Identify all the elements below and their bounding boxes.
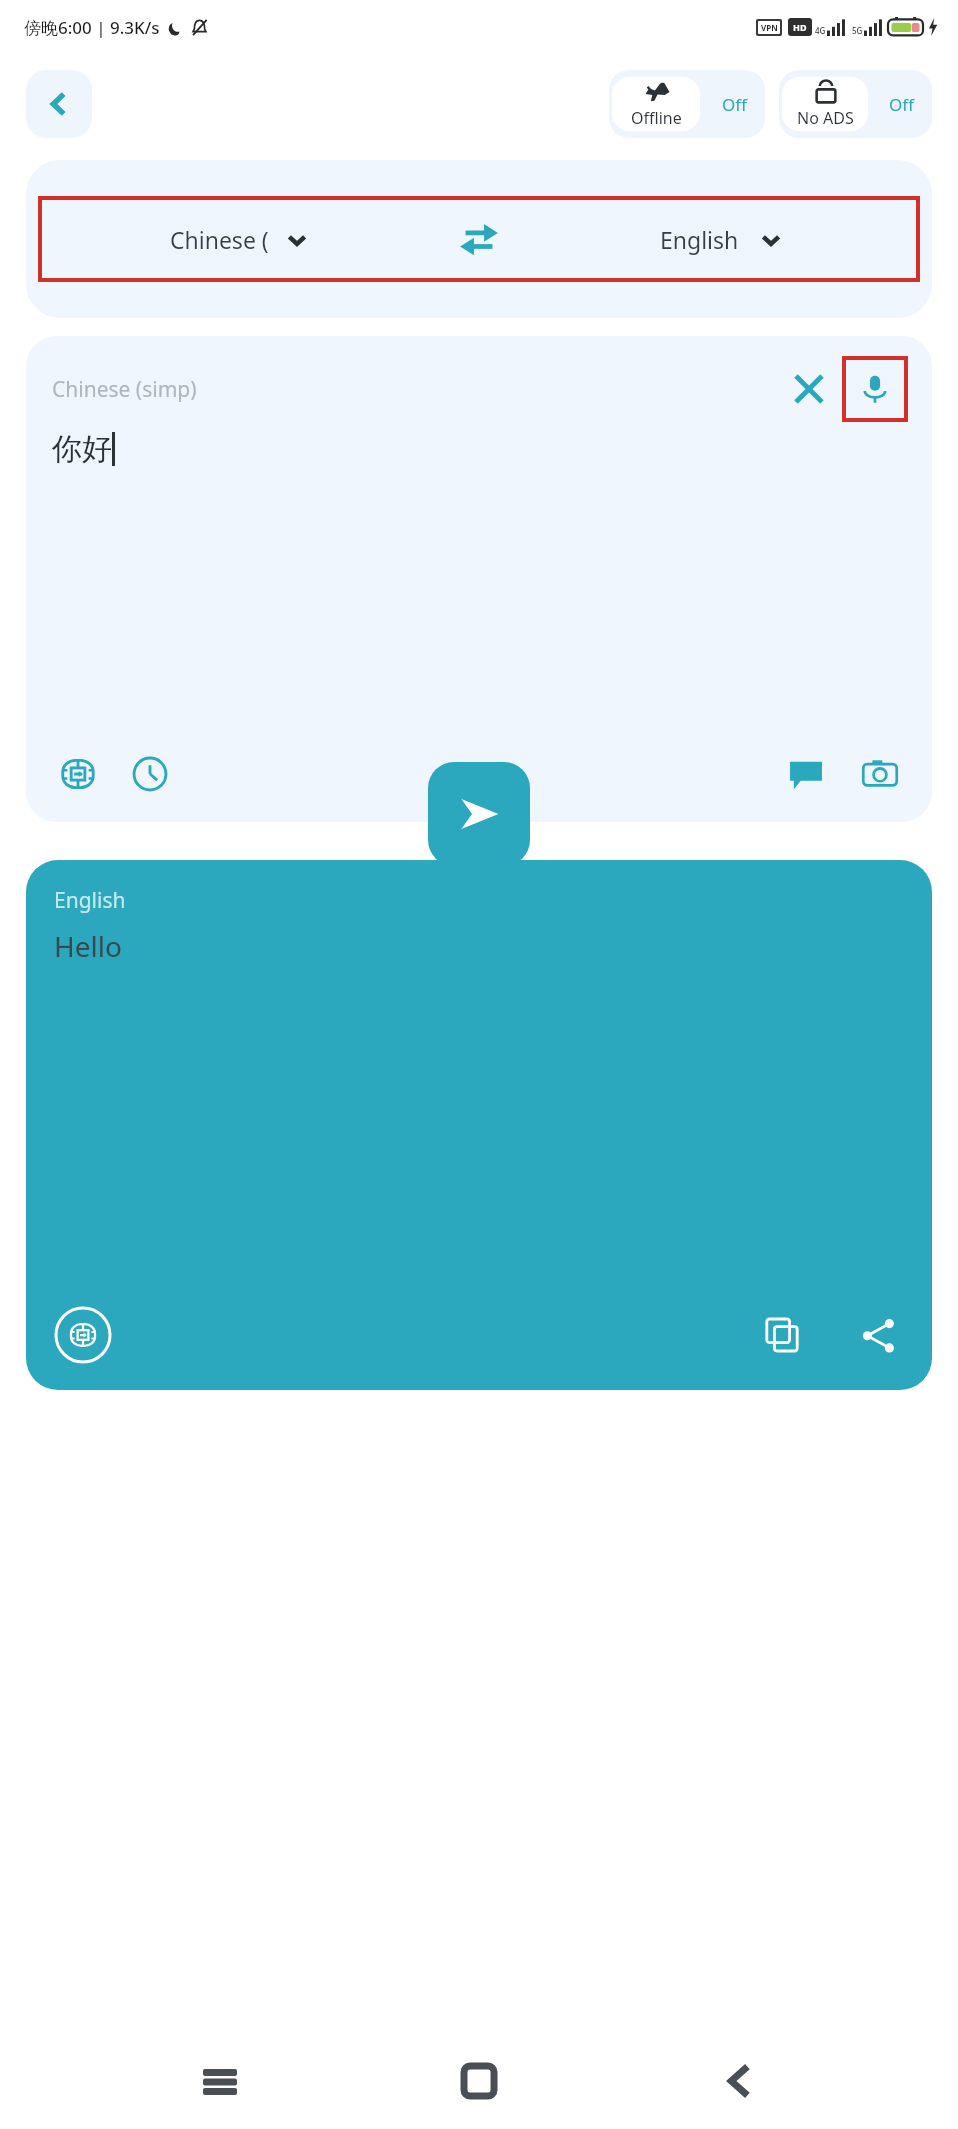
- button[interactable]: Offline: [609, 70, 765, 138]
- staticText: Offline: [631, 107, 682, 129]
- button[interactable]: Recents: [180, 2041, 260, 2121]
- staticText: Chinese (: [170, 224, 269, 255]
- button[interactable]: Back: [699, 2041, 779, 2121]
- button[interactable]: Back: [26, 70, 92, 138]
- button[interactable]: Copy: [756, 1309, 808, 1361]
- staticText: Hello: [54, 927, 122, 965]
- staticText: 5G: [852, 25, 863, 36]
- button[interactable]: Swap languages: [436, 198, 522, 280]
- button[interactable]: Share: [852, 1309, 904, 1361]
- staticText: Off: [889, 93, 914, 116]
- button[interactable]: AI: [54, 1306, 112, 1364]
- staticText: 傍晚6:00 | 9.3K/s: [24, 16, 160, 39]
- button[interactable]: English: [26, 860, 932, 1390]
- button[interactable]: Camera: [854, 748, 906, 800]
- staticText: Chinese (simp): [52, 375, 197, 404]
- button[interactable]: Chinese (simp): [26, 336, 932, 822]
- button[interactable]: Clear: [786, 366, 832, 412]
- button[interactable]: Home: [439, 2041, 519, 2121]
- button[interactable]: English: [522, 198, 918, 280]
- staticText: HD: [793, 21, 807, 33]
- button[interactable]: Conversation: [780, 748, 832, 800]
- staticText: 你好: [52, 430, 112, 468]
- staticText: English: [54, 886, 126, 915]
- button[interactable]: History: [124, 748, 176, 800]
- button[interactable]: No ADS: [779, 70, 932, 138]
- button[interactable]: AI translate: [52, 748, 104, 800]
- staticText: No ADS: [797, 107, 854, 129]
- staticText: English: [660, 224, 739, 255]
- staticText: 4G: [815, 25, 826, 36]
- staticText: Off: [722, 93, 747, 116]
- staticText: VPN: [761, 22, 778, 33]
- button[interactable]: Chinese (: [40, 198, 436, 280]
- button[interactable]: Translate: [428, 762, 530, 866]
- button[interactable]: Voice input: [844, 358, 906, 420]
